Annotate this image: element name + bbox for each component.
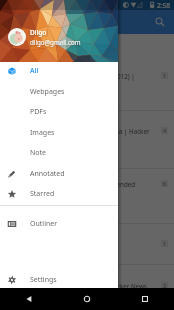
button[interactable]: Profile photo xyxy=(8,28,26,46)
button[interactable]: Annotated xyxy=(0,163,118,184)
staticText: What programming languages have tended t… xyxy=(8,180,159,199)
button[interactable]: PDFs xyxy=(0,101,118,122)
button[interactable]: Note xyxy=(0,142,118,163)
button[interactable]: Settings xyxy=(0,269,118,290)
staticText: Show HN: Diigo Chrome extension beta | H… xyxy=(8,127,159,135)
staticText: Settings xyxy=(30,275,57,285)
staticText: All xyxy=(30,66,39,76)
button[interactable]: Show HN: Diigo Chrome extension beta | H… xyxy=(0,111,174,169)
staticText: Best of Hacker News comments list (2012)… xyxy=(8,72,159,80)
button[interactable]: All xyxy=(0,60,118,81)
staticText: Note xyxy=(30,148,47,158)
staticText: 1 xyxy=(163,240,167,247)
staticText: 4 xyxy=(163,127,167,134)
button[interactable]: What programming languages have tended t… xyxy=(0,169,174,224)
button[interactable]: Ask HN: Which tools do you use? | Hacker… xyxy=(0,265,174,310)
staticText: 6 xyxy=(163,180,167,187)
button[interactable]: Search xyxy=(151,13,169,31)
staticText: Ask HN: Which tools do you use? | Hacker… xyxy=(8,282,159,290)
button[interactable]: Webpages xyxy=(0,81,118,102)
staticText: diigo@gmail.com xyxy=(30,38,81,46)
button[interactable]: Images xyxy=(0,122,118,143)
staticText: Starred xyxy=(30,189,55,199)
staticText: PDFs xyxy=(30,107,47,117)
button[interactable]: Starred xyxy=(0,183,118,204)
staticText: Webpages xyxy=(30,87,65,97)
staticText: Images xyxy=(30,128,55,138)
staticText: 1 xyxy=(163,72,167,79)
staticText: Diigo is shutting down its free plan a xyxy=(8,240,159,248)
staticText: Diigo xyxy=(30,28,47,37)
button[interactable]: Recent apps xyxy=(116,288,174,310)
button[interactable]: Best of Hacker News comments list (2012)… xyxy=(0,34,174,111)
staticText: 2 xyxy=(163,282,167,289)
button[interactable]: Back xyxy=(0,288,58,310)
staticText: Outliner xyxy=(30,219,58,229)
staticText: Annotated xyxy=(30,169,65,179)
button[interactable]: Home xyxy=(58,288,116,310)
button[interactable]: Diigo is shutting down its free plan a xyxy=(0,224,174,265)
staticText: 2:58 xyxy=(157,1,171,10)
button[interactable]: Outliner xyxy=(0,213,118,234)
